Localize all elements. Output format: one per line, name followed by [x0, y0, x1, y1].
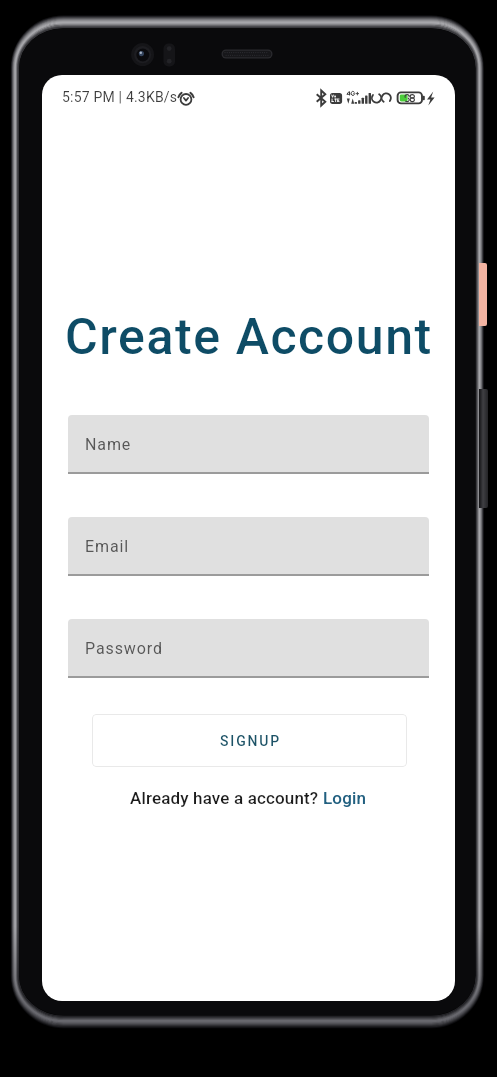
staticText: SIGNUP — [220, 733, 282, 749]
staticText: Email — [85, 537, 130, 556]
staticText: Already have a account? — [130, 788, 323, 808]
button[interactable]: Login — [323, 788, 367, 808]
staticText: Create Account — [65, 308, 433, 367]
button[interactable]: Password — [68, 619, 429, 678]
staticText: 5:57 PM | 4.3KB/s — [62, 89, 178, 105]
staticText: Login — [323, 788, 367, 808]
button[interactable]: SIGNUP — [92, 714, 407, 767]
button[interactable]: Name — [68, 415, 429, 474]
button[interactable]: Email — [68, 517, 429, 576]
staticText: Password — [85, 639, 163, 658]
staticText: Name — [85, 435, 132, 454]
